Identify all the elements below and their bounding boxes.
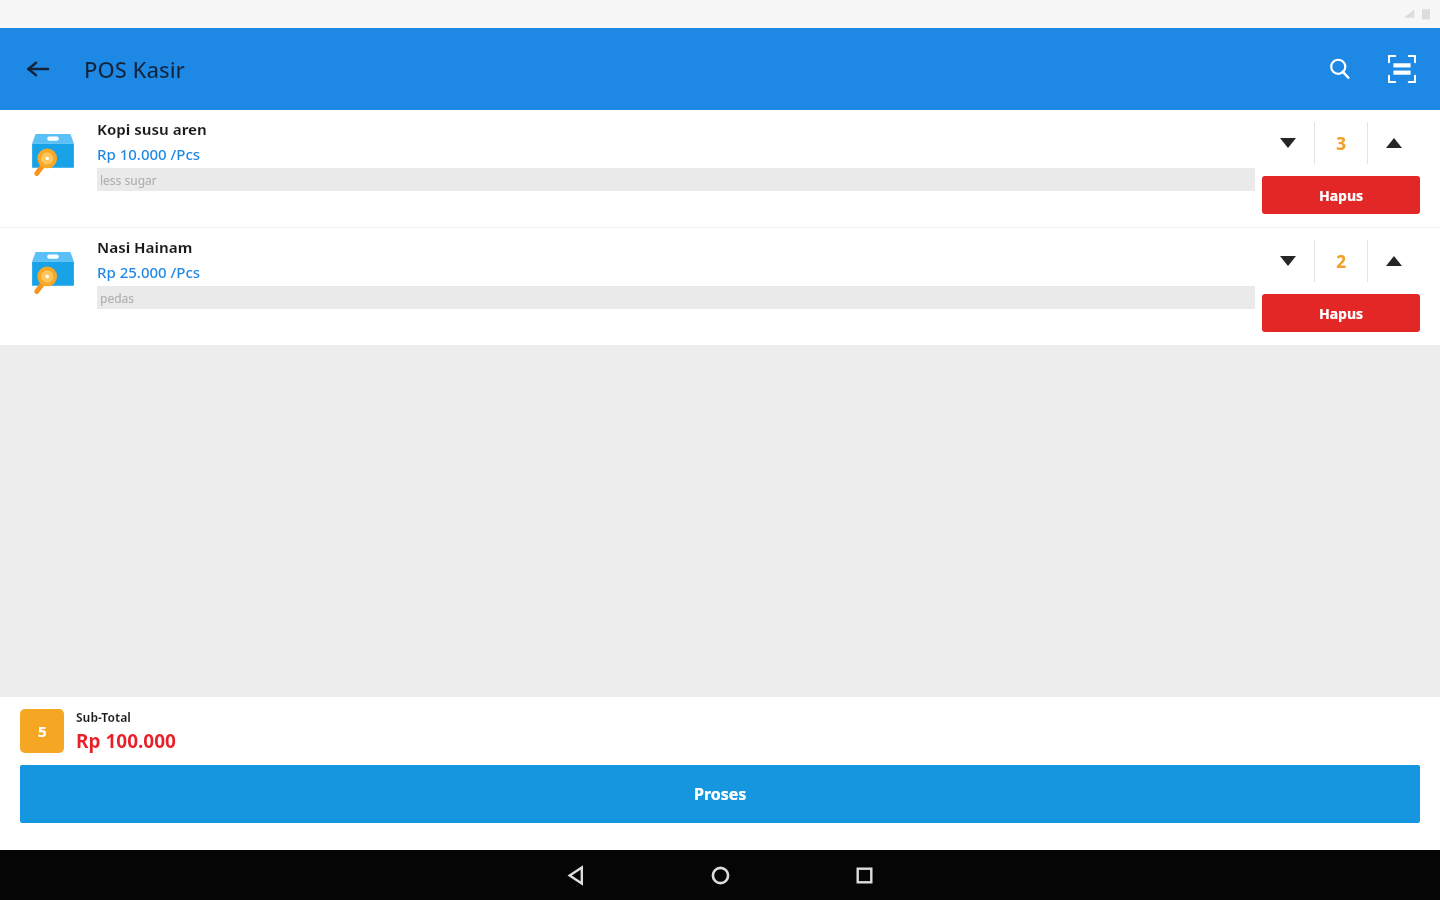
staticText: 3 — [1336, 132, 1346, 155]
button[interactable]: pedas — [97, 286, 1255, 309]
staticText: 5 — [38, 721, 47, 741]
button[interactable]: Proses — [20, 765, 1420, 823]
staticText: Rp 25.000 /Pcs — [97, 262, 201, 282]
staticText: Rp 100.000 — [76, 728, 176, 754]
staticText: Nasi Hainam — [97, 237, 193, 257]
button[interactable]: Recent apps — [826, 850, 902, 900]
staticText: Proses — [694, 783, 747, 805]
button[interactable]: Hapus — [1262, 294, 1420, 332]
button[interactable]: Scan barcode — [1378, 45, 1426, 93]
staticText: pedas — [100, 290, 135, 306]
button[interactable]: Decrease quantity — [1262, 240, 1314, 282]
button[interactable]: Back — [538, 850, 614, 900]
button[interactable]: Decrease quantity — [1262, 122, 1314, 164]
button[interactable]: less sugar — [97, 168, 1255, 191]
staticText: Rp 10.000 /Pcs — [97, 144, 201, 164]
button[interactable]: Hapus — [1262, 176, 1420, 214]
button[interactable]: Increase quantity — [1368, 240, 1420, 282]
button[interactable]: Increase quantity — [1368, 122, 1420, 164]
button[interactable]: Nasi Hainam — [0, 228, 1440, 345]
staticText: Sub-Total — [76, 709, 131, 725]
staticText: Kopi susu aren — [97, 119, 207, 139]
staticText: 2 — [1336, 250, 1346, 273]
staticText: Hapus — [1319, 186, 1364, 205]
button[interactable]: Home — [682, 850, 758, 900]
staticText: less sugar — [100, 172, 157, 188]
button[interactable]: Back — [14, 45, 62, 93]
button[interactable]: Search — [1316, 45, 1364, 93]
staticText: POS Kasir — [84, 54, 185, 84]
staticText: Hapus — [1319, 304, 1364, 323]
button[interactable]: Kopi susu aren — [0, 110, 1440, 227]
